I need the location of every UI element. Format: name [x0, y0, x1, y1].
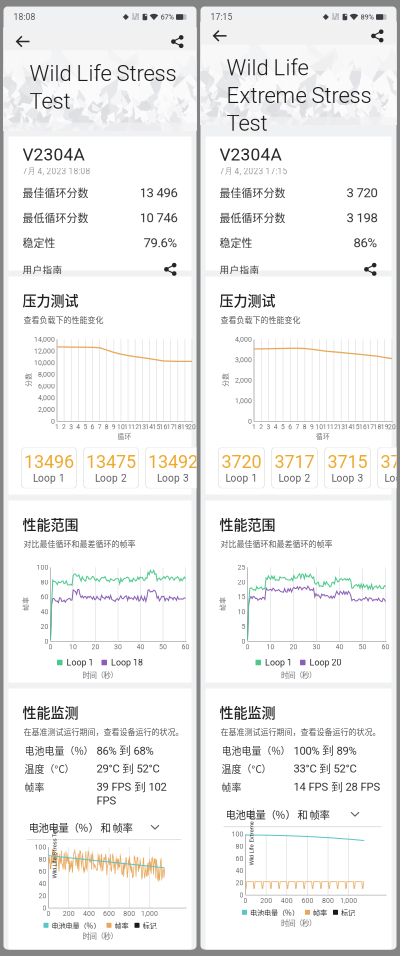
staticText: 20 [388, 423, 396, 431]
staticText: 86% [353, 235, 377, 250]
staticText: 10 [237, 608, 245, 616]
staticText: 12 [330, 423, 338, 431]
staticText: 60 [181, 643, 189, 651]
staticText: 循环 [316, 431, 330, 441]
staticText: 12,000 [34, 347, 55, 355]
staticText: 3719 [380, 451, 400, 472]
staticText: 10 [117, 423, 125, 431]
staticText: Wild Life Extreme Stress Test [222, 833, 280, 840]
staticText: 20 [235, 879, 243, 887]
staticText: 5 [281, 423, 285, 431]
button[interactable]: 3720 [218, 447, 264, 488]
button[interactable]: Share [165, 29, 189, 53]
staticText: 3715 [327, 451, 367, 472]
staticText: 40 [40, 608, 48, 616]
staticText: 在基准测试运行期间，查看设备运行的状况。 [220, 726, 380, 737]
staticText: Loop 3 [331, 472, 363, 484]
staticText: 14 FPS 到 28 FPS [293, 780, 380, 794]
staticText: 对比最佳循环和最差循环的帧率 [220, 538, 332, 549]
staticText: 稳定性 [219, 235, 252, 251]
staticText: 电池电量（%） [51, 920, 100, 930]
staticText: 最低循环分数 [22, 210, 88, 226]
staticText: V2304A [22, 144, 84, 165]
staticText: 40 [38, 880, 46, 888]
staticText: 标记 [341, 907, 355, 917]
staticText: Loop 1 [225, 472, 257, 484]
staticText: 3720 [221, 451, 261, 472]
button[interactable]: 3719 [377, 447, 400, 488]
staticText: 0 [239, 891, 243, 899]
button[interactable]: 电池电量（%） 和 帧率 [217, 803, 381, 825]
button[interactable]: Back [10, 29, 35, 53]
staticText: 3 720 [346, 185, 377, 200]
staticText: 性能范围 [22, 513, 78, 534]
staticText: 分数 [218, 375, 232, 385]
staticText: 7月 4, 2023 17:15 [219, 166, 287, 176]
staticText: 29°C 到 52°C [96, 762, 159, 776]
staticText: Loop 3 [157, 472, 189, 484]
staticText: 帧率 [24, 780, 44, 794]
button[interactable]: 用户指南 [205, 255, 391, 283]
staticText: 0 [42, 904, 46, 912]
staticText: 19 [381, 423, 389, 431]
staticText: 标记 [142, 920, 156, 930]
staticText: 5.20 [332, 13, 339, 17]
staticText: 6 [288, 423, 292, 431]
staticText: 稳定性 [22, 235, 55, 251]
staticText: 6 [90, 423, 94, 431]
staticText: 20 [40, 622, 48, 631]
staticText: 5 [83, 423, 87, 431]
staticText: 89% [361, 13, 374, 21]
staticText: 在基准测试运行期间，查看设备运行的状况。 [23, 726, 183, 737]
staticText: 50 [358, 643, 366, 651]
staticText: 400 [281, 897, 293, 905]
staticText: 电池电量（%） [221, 743, 290, 758]
staticText: 8,000 [38, 370, 55, 378]
staticText: 循环 [117, 431, 131, 441]
staticText: 6,000 [38, 382, 55, 390]
staticText: Loop 4 [384, 472, 400, 484]
staticText: 3 [266, 423, 270, 431]
staticText: 4 [76, 423, 80, 431]
staticText: 80 [235, 842, 243, 850]
staticText: 帧率 [313, 907, 327, 917]
staticText: 7月 4, 2023 18:08 [22, 166, 90, 176]
staticText: 60 [235, 854, 243, 863]
staticText: 39 FPS 到 102 FPS [96, 780, 166, 807]
staticText: 13 [337, 423, 345, 431]
staticText: 7 [296, 423, 300, 431]
staticText: 16 [160, 423, 168, 431]
staticText: 2 [62, 423, 66, 431]
button[interactable]: 3715 [324, 447, 370, 488]
staticText: KB/S [132, 17, 139, 21]
staticText: 13 496 [139, 185, 177, 200]
staticText: 200 [260, 897, 272, 905]
staticText: 0 [51, 417, 55, 425]
staticText: 3 [69, 423, 73, 431]
staticText: 0 [245, 643, 249, 651]
staticText: 100 [34, 843, 46, 851]
staticText: Loop 20 [309, 657, 341, 668]
staticText: 16 [359, 423, 367, 431]
staticText: 33°C 到 52°C [293, 762, 356, 776]
button[interactable]: Share [365, 24, 389, 48]
button[interactable]: 电池电量（%） 和 帧率 [20, 816, 181, 838]
button[interactable]: Back [207, 24, 232, 48]
staticText: 10 [266, 643, 274, 651]
staticText: 电池电量（%） [24, 743, 93, 758]
staticText: 18:08 [13, 12, 35, 22]
staticText: 25 [237, 563, 245, 571]
button[interactable]: 3717 [271, 447, 317, 488]
button[interactable]: 13496 [21, 447, 76, 488]
staticText: 40 [136, 643, 144, 651]
staticText: 20 [188, 423, 196, 431]
button[interactable]: 用户指南 [8, 255, 191, 283]
staticText: 40 [335, 643, 343, 651]
button[interactable]: 13492 [145, 447, 200, 488]
staticText: 13 [138, 423, 146, 431]
staticText: 60 [38, 867, 46, 875]
button[interactable]: 13475 [83, 447, 138, 488]
staticText: 8 [105, 423, 109, 431]
staticText: 电池电量（%） 和 帧率 [225, 807, 329, 822]
staticText: 性能监测 [22, 701, 78, 722]
